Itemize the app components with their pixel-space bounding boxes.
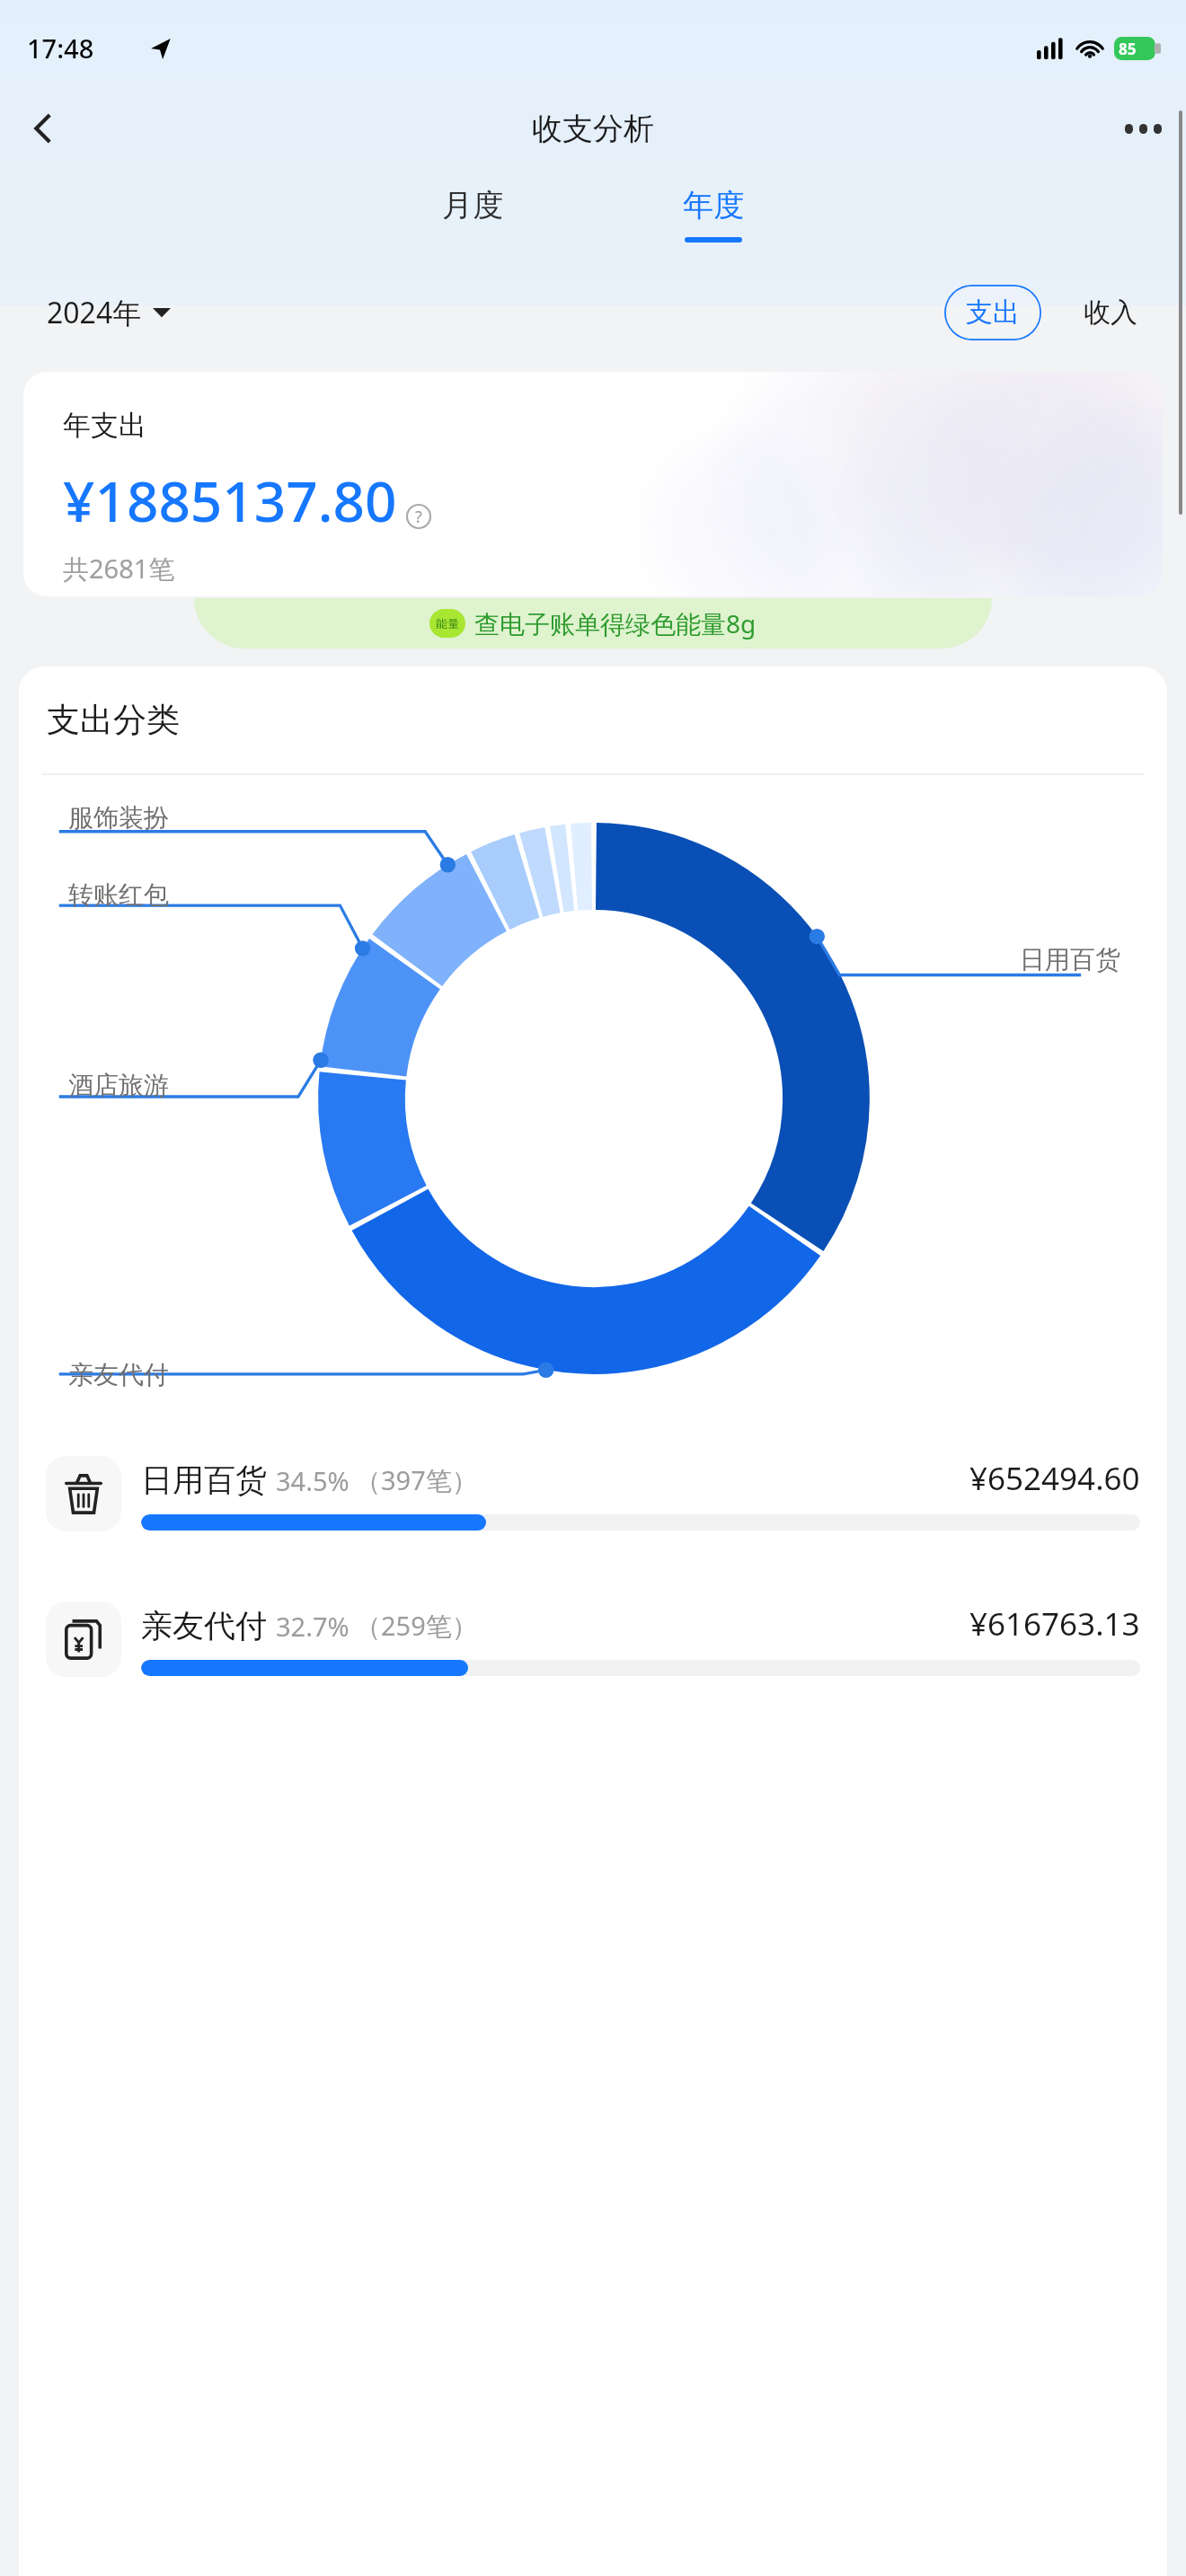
button[interactable]: 月度 xyxy=(431,186,514,243)
staticText: 共2681笔 xyxy=(63,551,175,587)
staticText: 服饰装扮 xyxy=(68,802,169,834)
staticText: 支出 xyxy=(966,296,1020,330)
staticText: 85 xyxy=(1119,39,1137,59)
staticText: 年支出 xyxy=(63,408,146,443)
staticText: 日用百货 xyxy=(141,1460,267,1500)
staticText: 2024年 xyxy=(47,293,142,332)
staticText: 亲友代付 xyxy=(68,1359,169,1390)
staticText: 能量 xyxy=(436,616,459,631)
staticText: 查电子账单得绿色能量8g xyxy=(474,606,757,640)
staticText: 日用百货 xyxy=(1020,944,1120,975)
button[interactable]: Back xyxy=(16,101,70,155)
staticText: （259笔） xyxy=(355,1608,478,1644)
staticText: 支出分类 xyxy=(47,699,180,741)
button[interactable]: 年支出 xyxy=(23,372,1163,596)
staticText: 年度 xyxy=(683,186,744,225)
staticText: 34.5% xyxy=(276,1463,350,1498)
button[interactable]: 日用百货 xyxy=(46,1456,1140,1531)
staticText: ? xyxy=(415,506,422,528)
staticText: （397笔） xyxy=(355,1462,478,1498)
staticText: 17:48 xyxy=(27,31,94,66)
button[interactable]: More options xyxy=(1116,101,1170,155)
button[interactable] xyxy=(194,598,992,648)
staticText: 转账红包 xyxy=(68,879,169,911)
button[interactable]: 2024年 xyxy=(47,293,171,332)
staticText: 收支分析 xyxy=(532,110,654,148)
staticText: 月度 xyxy=(442,186,503,225)
staticText: ¥616763.13 xyxy=(969,1602,1140,1645)
button[interactable]: 年度 xyxy=(672,186,755,243)
staticText: 32.7% xyxy=(276,1609,350,1644)
staticText: ¥1885137.80 xyxy=(63,463,397,538)
button[interactable]: 收入 xyxy=(1075,287,1146,339)
staticText: 收入 xyxy=(1084,296,1137,330)
staticText: 亲友代付 xyxy=(141,1606,267,1645)
staticText: ¥652494.60 xyxy=(969,1457,1140,1500)
button[interactable]: 亲友代付 xyxy=(46,1601,1140,1677)
staticText: 酒店旅游 xyxy=(68,1070,169,1101)
button[interactable]: Help xyxy=(406,504,431,529)
button[interactable]: 支出 xyxy=(943,285,1042,340)
